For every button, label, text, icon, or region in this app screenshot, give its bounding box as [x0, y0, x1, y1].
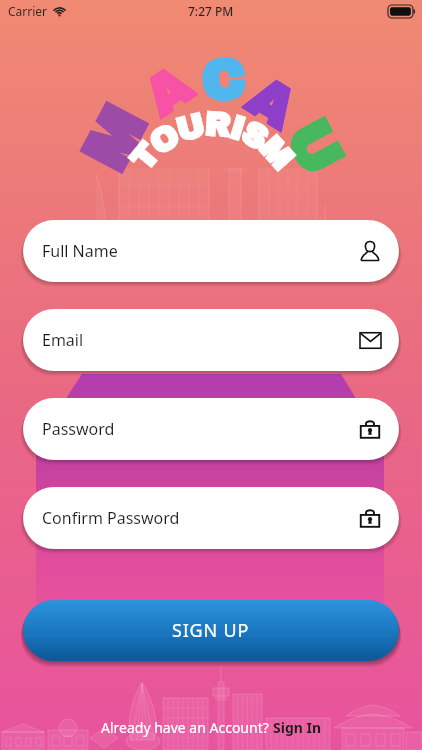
staticText: Already have an Account? — [101, 718, 273, 737]
other: Password — [359, 507, 381, 529]
button[interactable]: Password — [23, 398, 399, 460]
staticText: Password — [42, 418, 115, 440]
other: Password — [359, 418, 381, 440]
button[interactable]: Confirm Password — [23, 487, 399, 549]
other: Name — [359, 240, 381, 262]
button[interactable]: Email — [23, 309, 399, 371]
button[interactable]: SIGN UP — [23, 600, 399, 661]
other: Email — [360, 330, 381, 351]
staticText: 7:27 PM — [188, 3, 234, 19]
staticText: Carrier — [8, 3, 48, 19]
staticText: Email — [42, 329, 84, 351]
staticText: Confirm Password — [42, 507, 180, 529]
button[interactable]: Full Name — [23, 220, 399, 282]
staticText: Full Name — [42, 240, 118, 262]
button[interactable]: Already have an Account? — [101, 718, 322, 737]
staticText: Sign In — [273, 718, 322, 737]
staticText: SIGN UP — [172, 618, 250, 643]
